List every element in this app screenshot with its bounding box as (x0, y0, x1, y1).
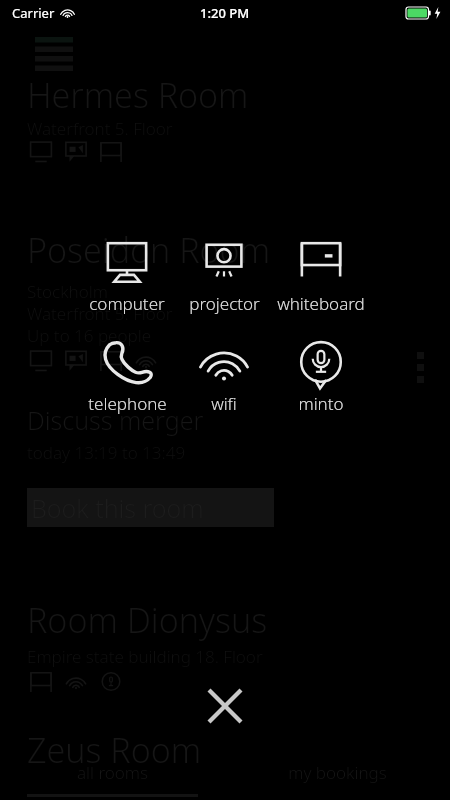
staticText: minto (298, 392, 344, 415)
button[interactable]: minto (274, 338, 368, 415)
staticText: my bookings (288, 761, 387, 784)
staticText: whiteboard (277, 292, 365, 315)
staticText: Zeus Room (27, 727, 202, 773)
button[interactable]: all rooms (0, 758, 225, 800)
staticText: Waterfront 5. Floor (27, 117, 173, 140)
staticText: Hermes Room (27, 72, 249, 118)
button[interactable]: More options (400, 338, 440, 396)
staticText: telephone (88, 392, 167, 415)
staticText: projector (189, 292, 260, 315)
staticText: Waterfront 5. Floor (27, 302, 173, 325)
button[interactable]: whiteboard (274, 238, 368, 315)
staticText: all rooms (77, 761, 148, 784)
staticText: Empire state building 18. Floor (27, 645, 263, 668)
button[interactable]: telephone (80, 338, 174, 415)
button[interactable]: wifi (177, 338, 271, 415)
staticText: Up to 16 people (27, 324, 152, 347)
staticText: Stockholm (27, 280, 108, 303)
button[interactable]: Close (201, 682, 249, 730)
staticText: Carrier (12, 4, 55, 22)
staticText: computer (89, 292, 165, 315)
staticText: Poseidon Room (27, 227, 270, 273)
button[interactable]: projector (177, 238, 271, 315)
staticText: Room Dionysus (27, 597, 268, 643)
staticText: 1:20 PM (200, 4, 250, 22)
button[interactable]: Menu (30, 30, 78, 78)
staticText: Discuss merger (27, 403, 204, 437)
staticText: wifi (211, 392, 237, 415)
button[interactable]: computer (80, 238, 174, 315)
